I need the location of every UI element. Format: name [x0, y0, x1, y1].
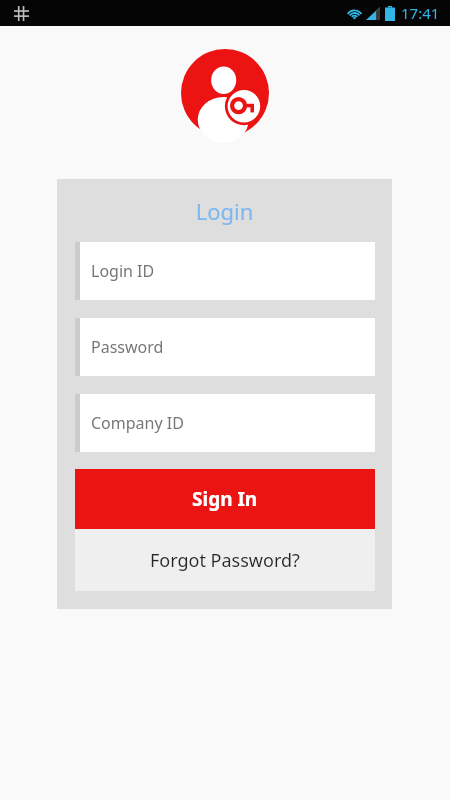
staticText: Forgot Password?: [150, 548, 300, 573]
button[interactable]: Sign In: [75, 469, 375, 529]
button[interactable]: Password: [75, 318, 375, 376]
button[interactable]: Company ID: [75, 394, 375, 452]
staticText: Sign In: [192, 486, 258, 512]
staticText: Login ID: [91, 260, 155, 282]
staticText: Company ID: [91, 412, 184, 434]
staticText: 17:41: [401, 3, 440, 23]
staticText: Login: [57, 196, 392, 226]
button[interactable]: Login ID: [75, 242, 375, 300]
staticText: Password: [91, 336, 164, 358]
button[interactable]: Forgot Password?: [75, 529, 375, 591]
other: User login logo: [181, 49, 269, 137]
